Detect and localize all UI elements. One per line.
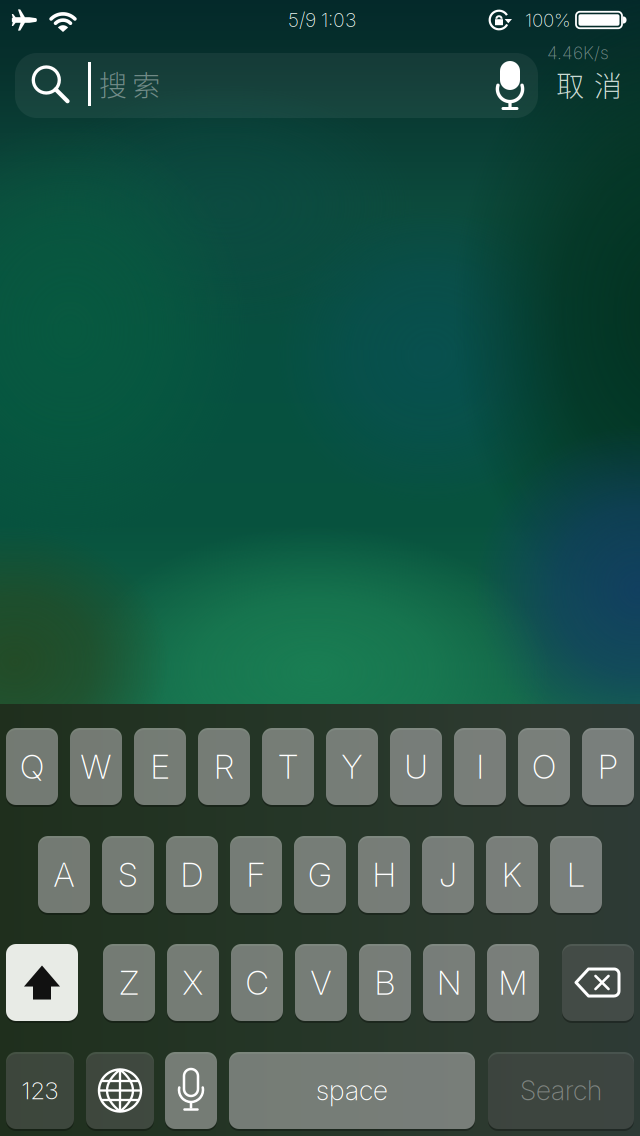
button[interactable]: O (518, 727, 570, 806)
staticText: 100% (525, 9, 571, 31)
staticText: Search (520, 1074, 602, 1107)
button[interactable]: Q (6, 727, 58, 806)
button[interactable]: Search (488, 1051, 634, 1130)
button[interactable]: 搜索 (15, 53, 538, 118)
staticText: X (182, 962, 203, 1003)
staticText: 123 (21, 1076, 58, 1105)
button[interactable]: S (102, 835, 154, 914)
staticText: W (80, 746, 111, 787)
button[interactable]: B (359, 943, 411, 1022)
staticText: T (278, 746, 298, 787)
staticText: U (404, 746, 427, 787)
staticText: I (476, 746, 483, 787)
button[interactable]: M (487, 943, 539, 1022)
button[interactable]: L (550, 835, 602, 914)
staticText: R (214, 746, 234, 787)
button[interactable]: I (454, 727, 506, 806)
staticText: V (310, 962, 331, 1003)
button[interactable]: J (422, 835, 474, 914)
staticText: H (372, 854, 395, 895)
button[interactable]: T (262, 727, 314, 806)
staticText: D (180, 854, 203, 895)
button[interactable]: Shift (6, 943, 78, 1022)
button[interactable]: H (358, 835, 410, 914)
staticText: K (502, 854, 522, 895)
button[interactable]: Numbers (6, 1051, 74, 1130)
staticText: 5/9 1:03 (288, 8, 356, 32)
staticText: M (498, 962, 527, 1003)
staticText: L (567, 854, 585, 895)
staticText: P (598, 746, 618, 787)
staticText: C (245, 962, 268, 1003)
staticText: B (374, 962, 395, 1003)
button[interactable]: G (294, 835, 346, 914)
button[interactable]: Y (326, 727, 378, 806)
staticText: F (246, 854, 265, 895)
staticText: Y (341, 746, 362, 787)
staticText: S (118, 854, 138, 895)
button[interactable]: Delete (562, 943, 634, 1022)
button[interactable]: X (167, 943, 219, 1022)
staticText: A (53, 854, 74, 895)
staticText: Z (119, 962, 139, 1003)
button[interactable]: space (229, 1051, 475, 1130)
button[interactable]: U (390, 727, 442, 806)
button[interactable]: W (70, 727, 122, 806)
button[interactable]: Dictation (165, 1051, 217, 1130)
staticText: O (532, 746, 556, 787)
button[interactable]: N (423, 943, 475, 1022)
button[interactable]: K (486, 835, 538, 914)
button[interactable]: C (231, 943, 283, 1022)
staticText: E (150, 746, 169, 787)
staticText: G (308, 854, 332, 895)
button[interactable]: F (230, 835, 282, 914)
staticText: Q (20, 746, 44, 787)
button[interactable]: Dictation (495, 60, 525, 112)
button[interactable]: Z (103, 943, 155, 1022)
staticText: N (437, 962, 461, 1003)
button[interactable]: E (134, 727, 186, 806)
button[interactable]: D (166, 835, 218, 914)
button[interactable]: Next keyboard (86, 1051, 154, 1130)
button[interactable]: R (198, 727, 250, 806)
button[interactable]: P (582, 727, 634, 806)
staticText: 取消 (556, 64, 622, 105)
staticText: space (316, 1074, 388, 1107)
button[interactable]: Cancel (556, 64, 622, 105)
button[interactable]: V (295, 943, 347, 1022)
staticText: 搜索 (99, 64, 160, 104)
button[interactable]: A (38, 835, 90, 914)
staticText: 4.46K/s (547, 42, 609, 63)
staticText: J (439, 854, 457, 895)
